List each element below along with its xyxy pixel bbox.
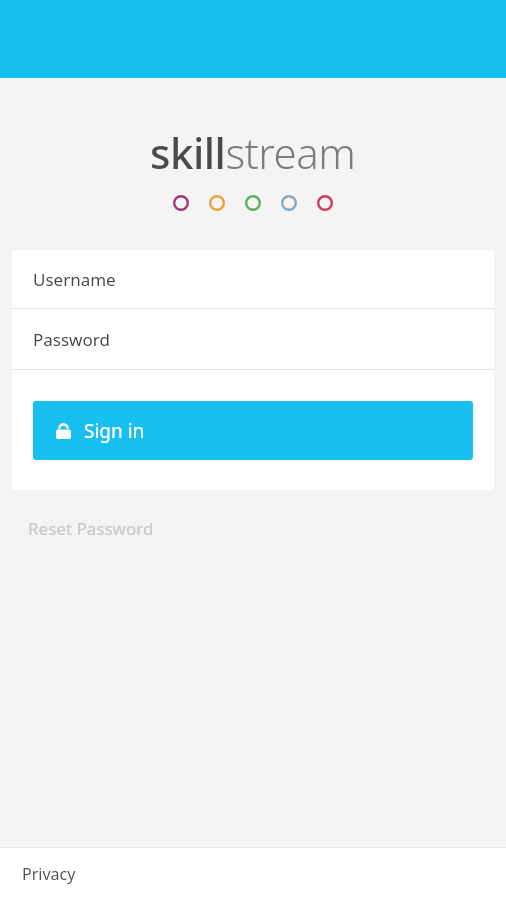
staticText: Reset Password (28, 517, 154, 540)
other: Lock (55, 422, 72, 439)
staticText: skillstream (150, 124, 356, 181)
button[interactable]: Reset Password (0, 510, 506, 546)
button[interactable]: Lock (33, 401, 473, 460)
button[interactable]: Username (12, 250, 494, 308)
button[interactable]: Privacy (0, 848, 98, 900)
staticText: Username (33, 268, 116, 291)
staticText: Privacy (22, 863, 76, 885)
button[interactable]: Password (12, 309, 494, 369)
staticText: Sign in (84, 418, 145, 444)
staticText: Password (33, 328, 110, 351)
